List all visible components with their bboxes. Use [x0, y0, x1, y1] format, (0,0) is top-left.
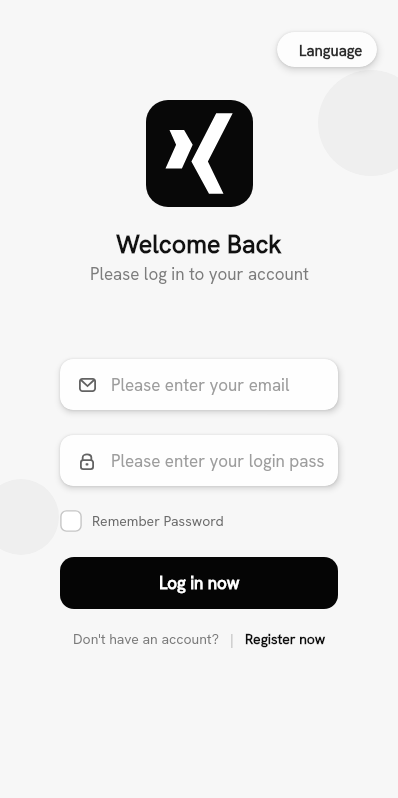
- button[interactable]: Remember Password: [60, 510, 224, 532]
- staticText: Please enter your email: [111, 374, 290, 396]
- staticText: Please log in to your account: [90, 263, 309, 285]
- staticText: Register now: [245, 630, 326, 648]
- button[interactable]: Language: [277, 32, 377, 67]
- button[interactable]: Please enter your email: [60, 359, 338, 410]
- staticText: Language: [299, 41, 363, 61]
- button[interactable]: Register now: [245, 630, 326, 648]
- button[interactable]: Log in now: [60, 557, 338, 609]
- staticText: |: [230, 630, 234, 648]
- button[interactable]: Please enter your login pass: [60, 435, 338, 486]
- staticText: Welcome Back: [116, 228, 282, 261]
- staticText: Don't have an account?: [73, 630, 219, 648]
- staticText: Log in now: [159, 572, 240, 594]
- staticText: Please enter your login pass: [111, 450, 325, 472]
- staticText: Remember Password: [92, 512, 224, 530]
